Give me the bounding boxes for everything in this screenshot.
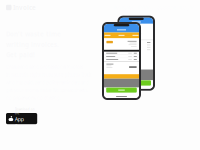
button[interactable]: Home xyxy=(6,3,36,12)
button[interactable]: Download on the App Store xyxy=(6,113,37,124)
staticText: Download on the xyxy=(15,107,35,115)
button[interactable] xyxy=(104,88,139,93)
button[interactable] xyxy=(119,80,153,86)
staticText: App Store xyxy=(15,115,28,130)
